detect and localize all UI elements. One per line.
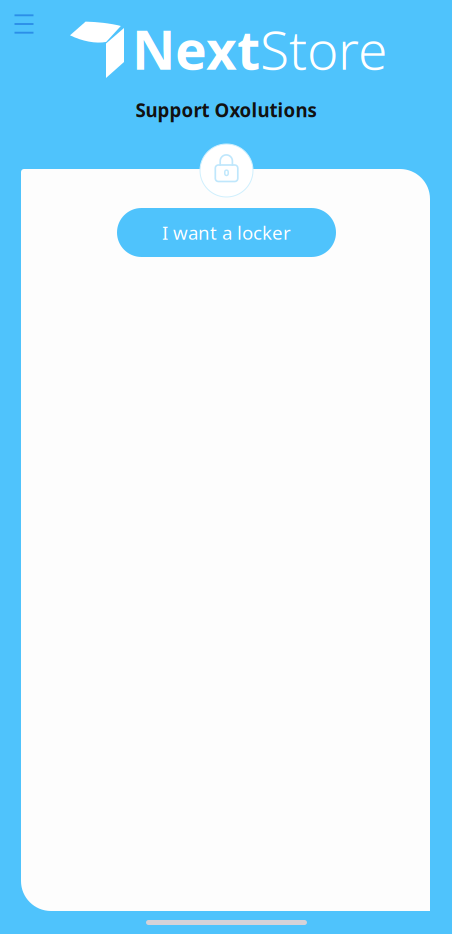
- staticText: I want a locker: [162, 220, 291, 245]
- staticText: Support Oxolutions: [135, 98, 316, 122]
- staticText: Next: [132, 14, 260, 84]
- button[interactable]: I want a locker: [117, 208, 336, 257]
- staticText: Store: [260, 14, 387, 84]
- button[interactable]: Menu: [2, 2, 46, 46]
